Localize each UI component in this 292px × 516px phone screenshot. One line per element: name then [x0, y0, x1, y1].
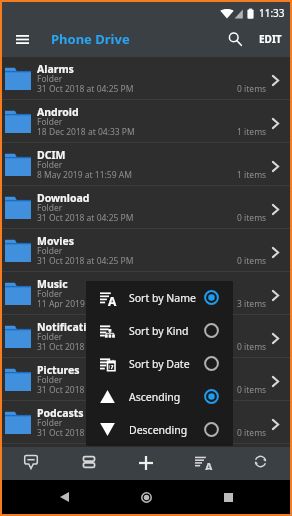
button[interactable]: Refresh [239, 445, 281, 478]
staticText: Sort by Kind [129, 324, 189, 338]
staticText: 1 items [237, 126, 267, 138]
staticText: Folder [37, 331, 63, 341]
button[interactable]: Download [2, 186, 290, 229]
button[interactable]: Music [2, 272, 290, 315]
staticText: Folder [37, 417, 63, 427]
staticText: Ascending [129, 390, 181, 404]
staticText: EDIT [259, 32, 282, 46]
button[interactable]: DCIM [2, 143, 290, 186]
button[interactable]: Pictures [2, 358, 290, 401]
staticText: Podcasts [37, 406, 84, 417]
staticText: Music [37, 277, 68, 288]
staticText: 0 items [237, 212, 267, 224]
staticText: 11:33 [259, 6, 285, 20]
button[interactable]: Add [125, 446, 167, 479]
staticText: 0 items [237, 83, 267, 95]
staticText: A [108, 293, 117, 307]
staticText: A [205, 459, 213, 470]
staticText: Folder [37, 159, 63, 169]
staticText: Folder [37, 73, 63, 83]
staticText: 3 items [237, 298, 267, 310]
button[interactable]: Menu [10, 24, 34, 54]
staticText: 31 Oct 2018 at 04:25 PM [37, 255, 134, 265]
staticText: 0 items [237, 384, 267, 396]
staticText: 31 Oct 2018 at 04:25 PM [37, 384, 134, 394]
button[interactable]: Alarms [2, 57, 290, 100]
staticText: 0 items [237, 255, 267, 267]
staticText: 31 Oct 2018 at 04:25 PM [37, 341, 134, 351]
button[interactable]: Movies [2, 229, 290, 272]
staticText: Notifications [37, 320, 106, 331]
button[interactable]: Descending [86, 413, 233, 446]
staticText: Alarms [37, 62, 74, 73]
button[interactable]: Sort [182, 445, 224, 478]
button[interactable]: List view [68, 445, 110, 478]
staticText: DCIM [37, 148, 66, 159]
staticText: Sort by Date [129, 357, 190, 371]
staticText: 31 Oct 2018 at 04:25 PM [37, 83, 134, 93]
staticText: Descending [129, 423, 188, 437]
staticText: 1 items [237, 169, 267, 181]
staticText: Folder [37, 288, 63, 298]
staticText: 18 Dec 2018 at 04:33 PM [37, 126, 135, 136]
staticText: Phone Drive [51, 30, 130, 48]
staticText: 8 May 2019 at 11:59 AM [37, 169, 132, 179]
button[interactable]: Ascending [86, 380, 233, 413]
staticText: Download [37, 191, 90, 202]
staticText: Pictures [37, 363, 80, 374]
staticText: Folder [37, 245, 63, 255]
button[interactable]: EDIT [255, 26, 286, 52]
staticText: Movies [37, 234, 74, 245]
staticText: Android [37, 105, 79, 116]
button[interactable]: Sort by Kind [86, 314, 233, 347]
staticText: 31 Oct 2018 at 04:25 PM [37, 427, 134, 437]
staticText: 0 items [237, 341, 267, 353]
button[interactable]: Notifications [2, 315, 290, 358]
button[interactable]: Podcasts [2, 401, 290, 444]
button[interactable]: Android [2, 100, 290, 143]
button[interactable]: Sort by Date [86, 347, 233, 380]
staticText: 0 items [237, 427, 267, 439]
button[interactable]: Back [44, 480, 84, 514]
button[interactable]: A [86, 281, 233, 314]
button[interactable]: Recents [208, 480, 248, 514]
staticText: 31 Oct 2018 at 04:25 PM [37, 212, 134, 222]
staticText: Folder [37, 374, 63, 384]
button[interactable]: Comment [10, 445, 52, 478]
staticText: Folder [37, 202, 63, 212]
staticText: Folder [37, 116, 63, 126]
button[interactable]: Home [126, 480, 166, 514]
staticText: Sort by Name [129, 291, 196, 305]
staticText: 11 Apr 2019 at 01:00 PM [37, 298, 134, 308]
button[interactable]: Search [221, 24, 249, 54]
